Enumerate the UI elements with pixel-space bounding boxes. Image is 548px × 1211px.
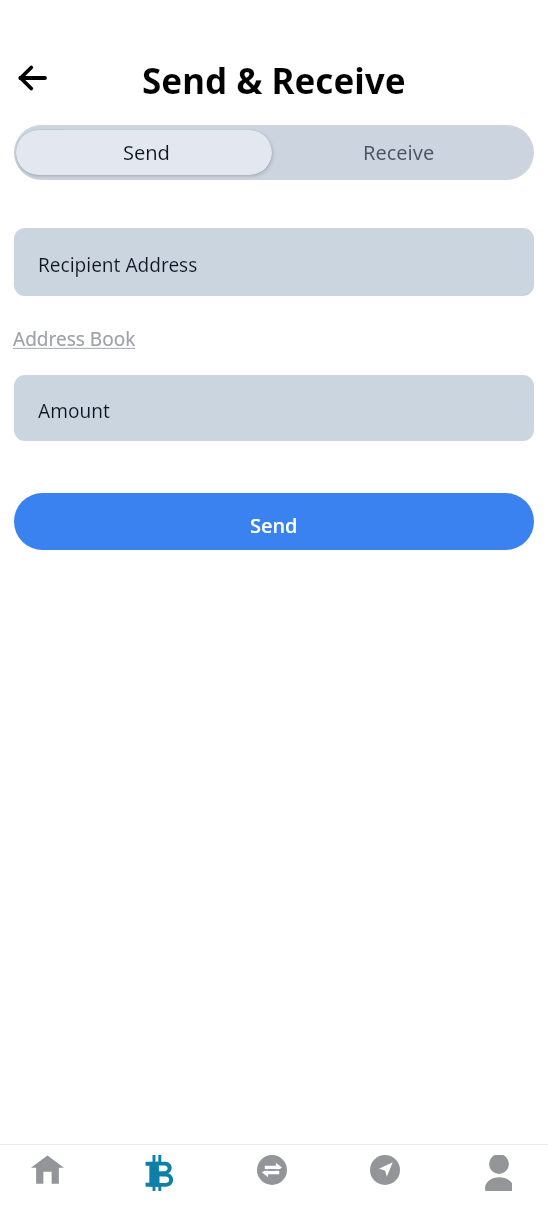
button[interactable]: Account (470, 1145, 524, 1211)
staticText: Recipient Address (38, 252, 198, 278)
button[interactable]: Send (16, 130, 272, 175)
button[interactable]: Swap (245, 1145, 299, 1211)
button[interactable]: Send (358, 1145, 412, 1211)
staticText: Send & Receive (142, 57, 406, 105)
button[interactable]: Receive (274, 125, 534, 180)
button[interactable]: Address Book (0, 320, 150, 358)
staticText: Amount (38, 398, 110, 424)
button[interactable]: Back (7, 54, 55, 102)
button[interactable]: Amount (14, 375, 534, 441)
staticText: Address Book (13, 326, 136, 352)
button[interactable]: Send (14, 493, 534, 550)
staticText: Receive (363, 139, 435, 166)
button[interactable]: Recipient Address (14, 228, 534, 296)
button[interactable]: Home (20, 1145, 74, 1211)
staticText: Send (250, 512, 298, 539)
button[interactable]: Bitcoin (133, 1145, 187, 1211)
staticText: Send (123, 139, 170, 166)
